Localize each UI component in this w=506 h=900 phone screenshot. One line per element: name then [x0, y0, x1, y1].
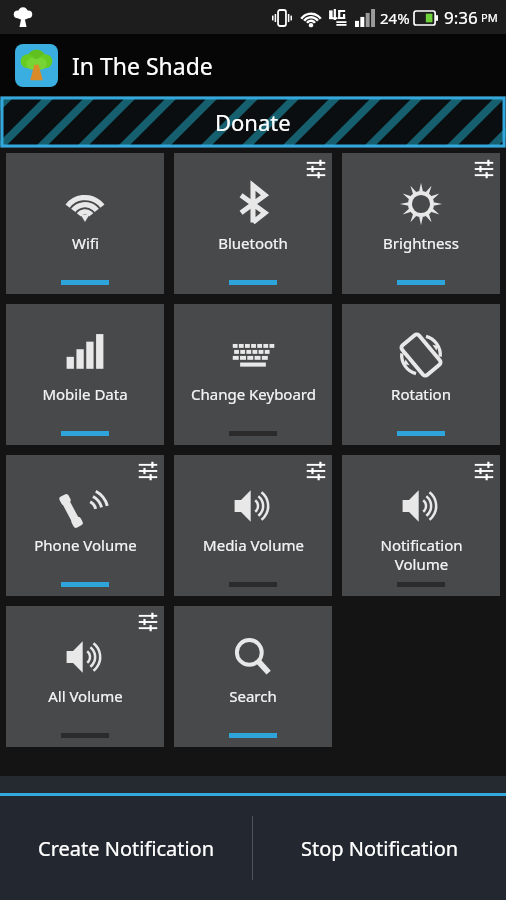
button[interactable]: Notification Volume settings — [473, 460, 495, 482]
staticText: Rotation — [391, 384, 451, 404]
button[interactable]: Mobile Data — [6, 304, 164, 445]
staticText: Search — [229, 686, 277, 706]
button[interactable]: Brightness settings — [473, 158, 495, 180]
button[interactable]: Media Volume settings — [305, 460, 327, 482]
staticText: 24% — [380, 8, 410, 28]
button[interactable]: Bluetooth settings — [174, 153, 332, 294]
staticText: Media Volume — [203, 535, 304, 555]
staticText: In The Shade — [72, 50, 213, 81]
staticText: Change Keyboard — [191, 384, 316, 404]
button[interactable]: Stop Notification — [253, 796, 506, 900]
staticText: Wifi — [72, 233, 99, 253]
staticText: Stop Notification — [301, 835, 459, 862]
button[interactable]: Bluetooth settings — [305, 158, 327, 180]
staticText: Create Notification — [38, 835, 215, 862]
button[interactable]: Notification Volume settings — [342, 455, 500, 596]
button[interactable]: Phone Volume settings — [6, 455, 164, 596]
button[interactable]: Phone Volume settings — [137, 460, 159, 482]
button[interactable]: Brightness settings — [342, 153, 500, 294]
staticText: Brightness — [383, 233, 459, 253]
staticText: Donate — [215, 107, 291, 137]
button[interactable]: Rotation — [342, 304, 500, 445]
staticText: Mobile Data — [42, 384, 128, 404]
staticText: 9:36 — [444, 6, 478, 29]
button[interactable]: Media Volume settings — [174, 455, 332, 596]
button[interactable]: Search — [174, 606, 332, 747]
button[interactable]: Change Keyboard — [174, 304, 332, 445]
staticText: Phone Volume — [34, 535, 137, 555]
button[interactable]: All Volume settings — [137, 611, 159, 633]
staticText: Bluetooth — [218, 233, 288, 253]
button[interactable]: Create Notification — [0, 796, 252, 900]
button[interactable]: All Volume settings — [6, 606, 164, 747]
button[interactable]: Wifi — [6, 153, 164, 294]
staticText: Notification Volume — [380, 535, 463, 574]
staticText: PM — [481, 10, 498, 25]
button[interactable]: Donate — [2, 98, 504, 146]
staticText: All Volume — [48, 686, 123, 706]
